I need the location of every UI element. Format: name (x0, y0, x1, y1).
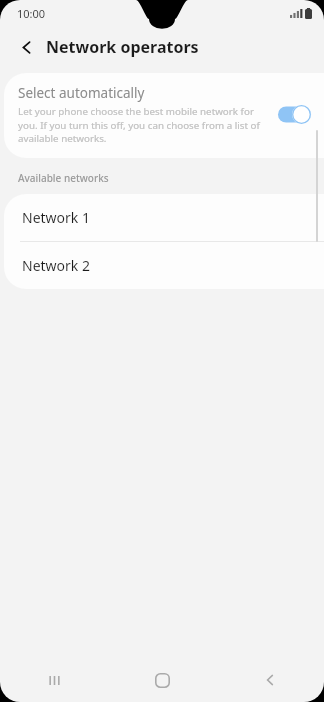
staticText: Network 2 (22, 256, 90, 275)
staticText: 10:00 (17, 6, 46, 21)
button[interactable]: Recent apps (0, 658, 108, 702)
button[interactable]: Select automatically (4, 73, 324, 158)
button[interactable]: Select automatically (278, 105, 311, 124)
button[interactable]: Network 2 (4, 242, 324, 289)
staticText: Available networks (18, 171, 109, 185)
staticText: Select automatically (18, 84, 145, 102)
button[interactable]: Network 1 (4, 194, 324, 241)
button[interactable]: Home (108, 658, 216, 702)
staticText: Network 1 (22, 208, 90, 227)
button[interactable]: Back (216, 658, 324, 702)
staticText: Let your phone choose the best mobile ne… (18, 105, 272, 144)
button[interactable]: Back (9, 30, 43, 64)
staticText: Network operators (46, 36, 199, 58)
